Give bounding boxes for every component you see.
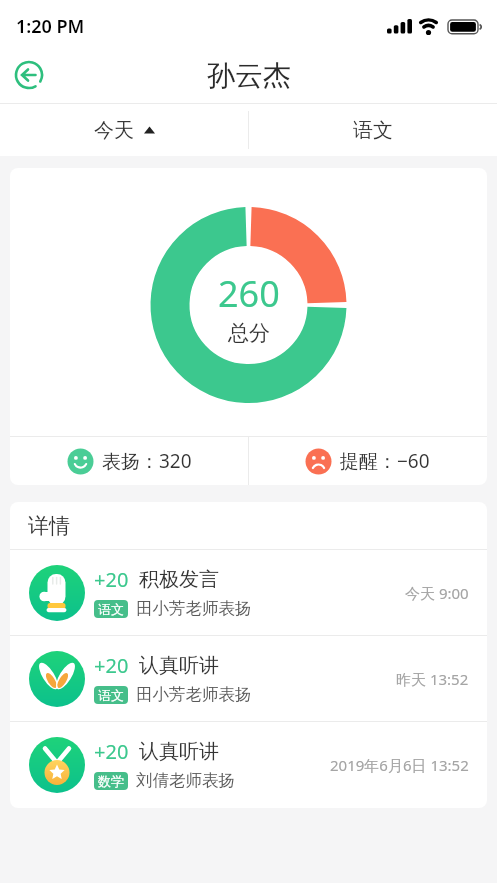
staticText: 260 [218,269,280,318]
staticText: 昨天 13:52 [396,669,469,689]
staticText: 今天 9:00 [405,583,469,603]
button[interactable]: +20 [10,636,487,721]
staticText: +20 [94,738,129,765]
staticText: 今天 [94,118,134,143]
staticText: 详情 [28,513,70,539]
staticText: +20 [94,566,129,593]
staticText: 语文 [98,601,124,617]
button[interactable]: 表扬：320 [10,437,248,485]
staticText: 1:20 PM [16,14,85,39]
staticText: 认真听讲 [139,739,219,764]
staticText: 2019年6月6日 13:52 [330,755,469,775]
button[interactable]: 提醒：−60 [248,437,487,485]
button[interactable]: 语文 [248,104,497,156]
staticText: 孙云杰 [207,58,291,93]
staticText: +20 [94,652,129,679]
button[interactable]: +20 [10,550,487,635]
staticText: 刘倩老师表扬 [136,770,235,791]
staticText: 田小芳老师表扬 [136,684,252,705]
staticText: 积极发言 [139,567,219,592]
staticText: 表扬：320 [102,448,192,474]
staticText: 语文 [353,118,393,143]
staticText: 语文 [98,687,124,703]
staticText: 田小芳老师表扬 [136,598,252,619]
button[interactable]: +20 [10,722,487,807]
staticText: 总分 [228,320,270,346]
staticText: 认真听讲 [139,653,219,678]
staticText: 数学 [98,773,124,789]
staticText: 提醒：−60 [340,448,430,474]
button[interactable]: 今天 [0,104,248,156]
button[interactable] [12,58,46,92]
